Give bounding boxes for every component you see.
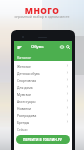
button[interactable]: Scan [60,45,64,49]
button[interactable]: Для дома [14,83,72,90]
button[interactable]: Search [66,45,70,49]
button[interactable]: Menu [17,45,22,50]
button[interactable]: Детская обувь [14,69,72,76]
button[interactable]: Спортивная [14,76,72,83]
button[interactable]: Женское [14,62,72,69]
button[interactable]: Распродажа [14,111,72,118]
button[interactable]: ПЕРЕЙТИ В ГОБЛИН.РУ [16,135,70,144]
staticText: МНОГО [0,5,84,16]
staticText: Детская обувь [17,71,40,75]
staticText: Аксессуары [17,99,36,103]
staticText: Обувь [31,44,44,50]
button[interactable]: Мужское [14,90,72,97]
staticText: Мужское [17,92,32,96]
button[interactable]: Аксессуары [14,97,72,104]
staticText: Новинки [17,106,32,110]
staticText: Для дома [17,85,33,89]
staticText: Спортивная [17,78,37,82]
staticText: ПЕРЕЙТИ В ГОБЛИН.РУ [23,138,63,142]
staticText: Женское [17,64,31,68]
button[interactable]: Новинки [14,104,72,111]
staticText: огромный выбор в одном месте [0,14,84,19]
button[interactable]: Бренды [14,118,72,125]
staticText: Бренды [17,120,30,124]
staticText: Распродажа [17,113,37,117]
staticText: Каталог [17,55,32,60]
staticText: Сейчас [17,128,28,132]
